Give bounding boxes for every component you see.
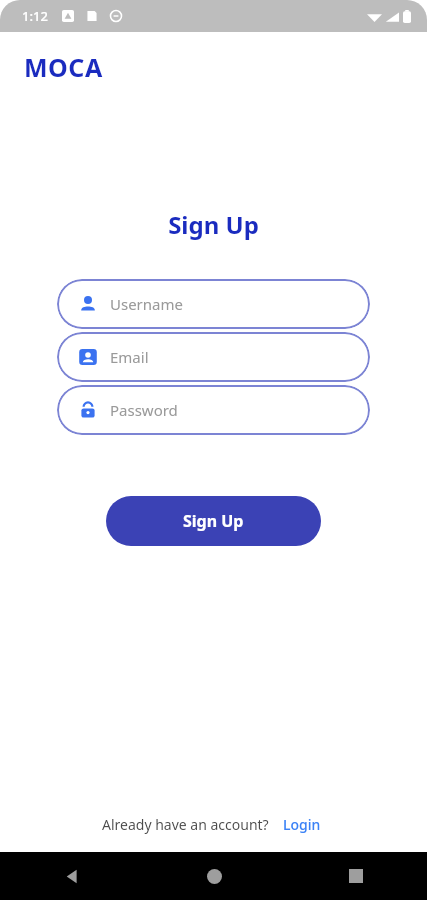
staticText: Login xyxy=(283,815,321,834)
button[interactable]: Login xyxy=(269,811,325,838)
staticText: Email xyxy=(110,347,149,367)
button[interactable]: Home xyxy=(143,852,285,900)
staticText: Password xyxy=(110,400,178,420)
staticText: MOCA xyxy=(24,50,103,84)
staticText: Sign Up xyxy=(183,510,244,532)
button[interactable]: Back xyxy=(0,852,143,900)
button[interactable]: Sign Up xyxy=(106,496,321,546)
button[interactable]: Username xyxy=(57,279,370,329)
button[interactable]: Password xyxy=(57,385,370,435)
staticText: 1:12 xyxy=(22,7,48,25)
button[interactable]: Recent apps xyxy=(285,852,427,900)
staticText: Username xyxy=(110,294,183,314)
staticText: Already have an account? xyxy=(102,815,269,834)
button[interactable]: Email xyxy=(57,332,370,382)
staticText: Sign Up xyxy=(0,208,427,241)
